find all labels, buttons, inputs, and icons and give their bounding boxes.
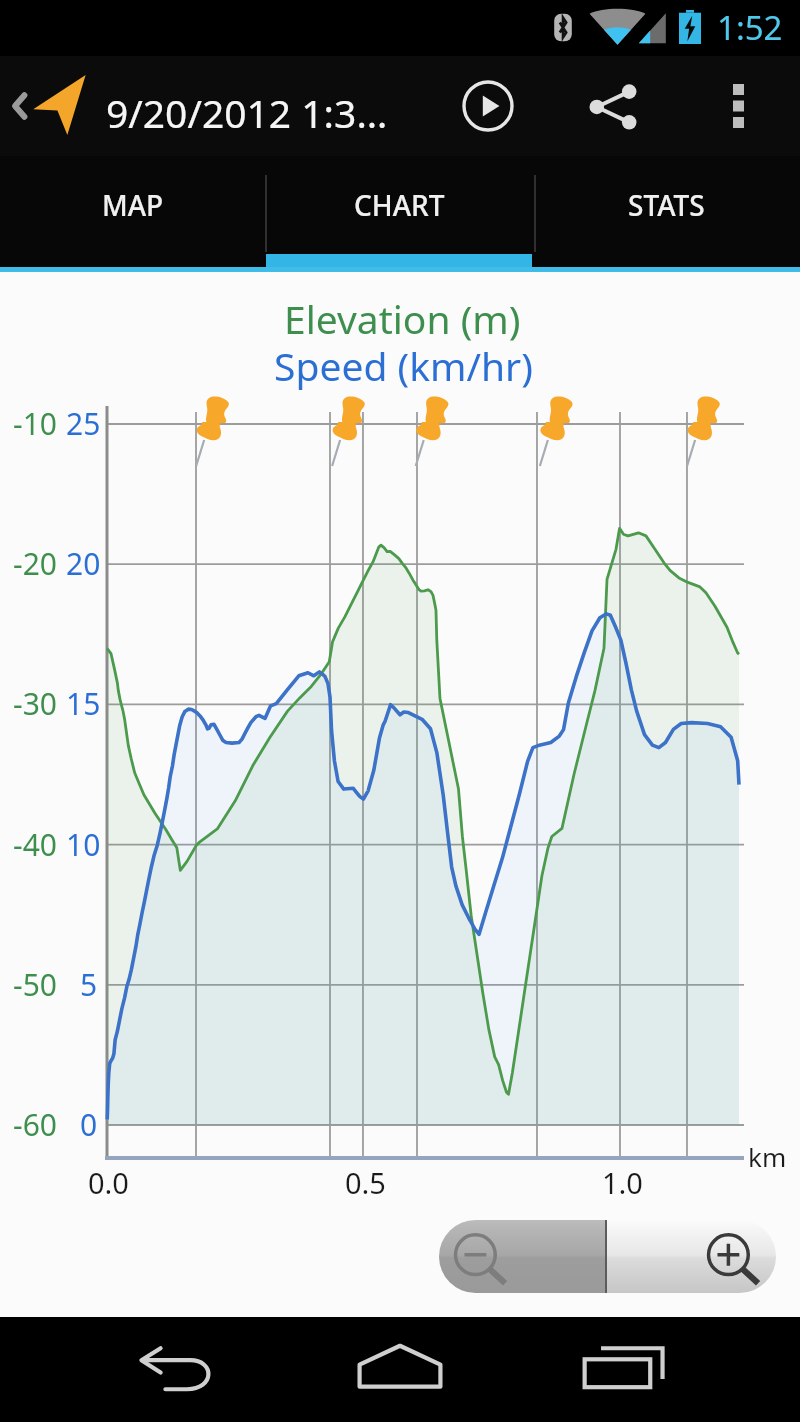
button[interactable]: More options: [692, 56, 784, 156]
button[interactable]: Recent apps: [554, 1317, 694, 1422]
staticText: 0: [80, 1104, 98, 1145]
staticText: 9/20/2012 1:3…: [106, 86, 388, 139]
staticText: STATS: [628, 186, 705, 224]
button[interactable]: Zoom in: [607, 1220, 776, 1293]
button[interactable]: Play track: [434, 56, 542, 156]
button[interactable]: Back: [109, 1317, 249, 1422]
button[interactable]: CHART: [266, 156, 533, 254]
staticText: 0.5: [345, 1163, 386, 1202]
staticText: -10: [13, 403, 57, 444]
staticText: 15: [66, 683, 101, 724]
button[interactable]: Share: [559, 56, 667, 156]
staticText: -60: [13, 1104, 57, 1145]
staticText: Speed (km/hr): [274, 339, 533, 392]
staticText: -50: [13, 964, 57, 1005]
staticText: -20: [13, 543, 57, 584]
staticText: 25: [66, 403, 101, 444]
button[interactable]: Zoom out: [439, 1220, 605, 1293]
button[interactable]: MAP: [0, 156, 266, 254]
staticText: 1.0: [602, 1163, 643, 1202]
staticText: Elevation (m): [284, 292, 521, 345]
staticText: -30: [13, 683, 57, 724]
button[interactable]: STATS: [533, 156, 800, 254]
staticText: MAP: [102, 186, 164, 224]
staticText: 10: [66, 824, 101, 865]
staticText: 1:52: [717, 5, 783, 50]
button[interactable]: Navigate up: [0, 56, 100, 156]
staticText: CHART: [354, 186, 445, 224]
staticText: 20: [66, 543, 101, 584]
staticText: 5: [80, 964, 98, 1005]
staticText: -40: [13, 824, 57, 865]
staticText: 0.0: [88, 1163, 129, 1202]
button[interactable]: Home: [330, 1317, 470, 1422]
staticText: km: [748, 1139, 787, 1174]
